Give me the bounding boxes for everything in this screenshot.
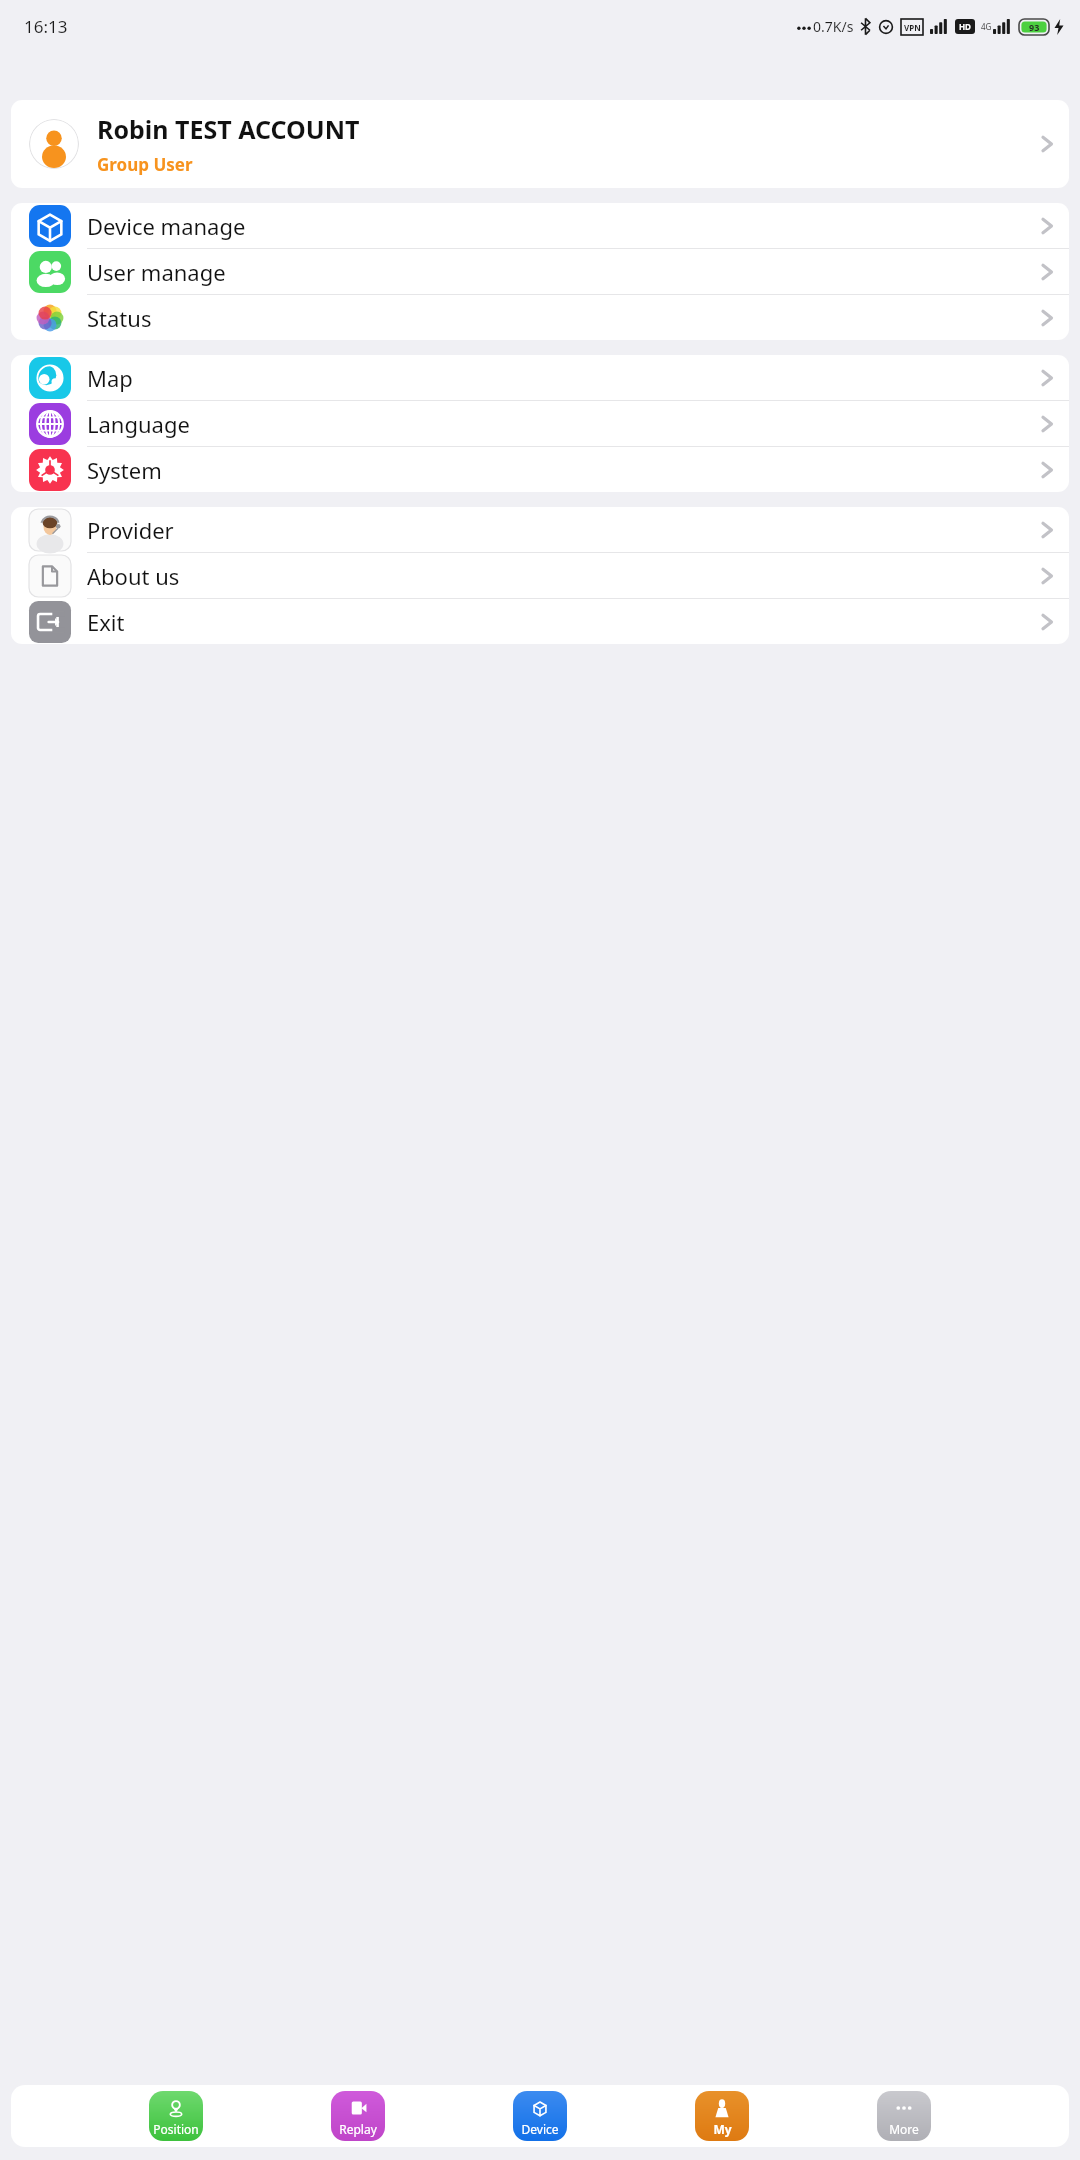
button[interactable]: Device: [513, 2091, 567, 2141]
staticText: 16:13: [24, 15, 68, 38]
staticText: 0.7K/s: [813, 17, 854, 36]
button[interactable]: Exit: [11, 599, 1069, 644]
button[interactable]: User manage: [11, 249, 1069, 294]
button[interactable]: Status: [11, 295, 1069, 340]
other: Open: [1039, 305, 1055, 331]
staticText: Position: [153, 2121, 199, 2137]
button[interactable]: My: [695, 2091, 749, 2141]
other: Open: [1039, 563, 1055, 589]
button[interactable]: Device manage: [11, 203, 1069, 248]
staticText: 93: [1029, 21, 1040, 33]
button[interactable]: Provider: [11, 507, 1069, 552]
staticText: Group User: [97, 153, 193, 176]
staticText: Exit: [87, 607, 1039, 637]
staticText: 4G: [981, 21, 992, 32]
other: Open: [1039, 131, 1055, 157]
button[interactable]: Language: [11, 401, 1069, 446]
staticText: User manage: [87, 257, 1039, 287]
staticText: Device manage: [87, 211, 1039, 241]
staticText: Device: [521, 2121, 559, 2137]
other: Open: [1039, 411, 1055, 437]
other: Open: [1039, 609, 1055, 635]
button[interactable]: System: [11, 447, 1069, 492]
staticText: My: [713, 2121, 732, 2137]
button[interactable]: About us: [11, 553, 1069, 598]
staticText: Language: [87, 409, 1039, 439]
button[interactable]: More: [877, 2091, 931, 2141]
button[interactable]: Map: [11, 355, 1069, 400]
button[interactable]: Replay: [331, 2091, 385, 2141]
other: Open: [1039, 365, 1055, 391]
staticText: HD: [959, 21, 971, 32]
button[interactable]: Position: [149, 2091, 203, 2141]
staticText: Provider: [87, 515, 1039, 545]
staticText: System: [87, 455, 1039, 485]
button[interactable]: Robin TEST ACCOUNT: [11, 100, 1069, 188]
staticText: Robin TEST ACCOUNT: [97, 112, 360, 146]
staticText: VPN: [904, 22, 921, 33]
staticText: Map: [87, 363, 1039, 393]
other: Open: [1039, 259, 1055, 285]
staticText: About us: [87, 561, 1039, 591]
other: Open: [1039, 213, 1055, 239]
staticText: Status: [87, 303, 1039, 333]
other: Open: [1039, 457, 1055, 483]
staticText: More: [889, 2121, 919, 2137]
other: Open: [1039, 517, 1055, 543]
staticText: Replay: [339, 2121, 377, 2137]
